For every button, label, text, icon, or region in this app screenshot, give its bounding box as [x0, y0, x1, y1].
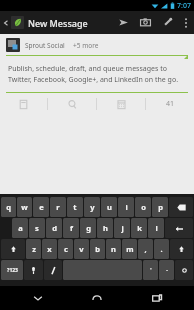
button[interactable]: Backspace: [169, 197, 193, 217]
button[interactable]: g: [80, 218, 96, 238]
button[interactable]: -: [159, 260, 174, 280]
button[interactable]: h: [97, 218, 113, 238]
staticText: k: [137, 223, 142, 233]
button[interactable]: n: [106, 239, 121, 259]
button[interactable]: Search: [48, 93, 96, 115]
button[interactable]: Schedule: [97, 93, 145, 115]
button[interactable]: j: [114, 218, 130, 238]
button[interactable]: Settings: [175, 260, 193, 280]
button[interactable]: u: [101, 197, 117, 217]
staticText: s: [35, 223, 39, 233]
button[interactable]: Attach: [156, 11, 178, 34]
staticText: ?123: [7, 267, 18, 274]
button[interactable]: q: [1, 197, 16, 217]
button[interactable]: Back: [16, 286, 60, 310]
staticText: i: [125, 202, 128, 212]
staticText: q: [6, 202, 11, 212]
button[interactable]: f: [63, 218, 79, 238]
button[interactable]: b: [90, 239, 105, 259]
button[interactable]: x: [42, 239, 57, 259]
staticText: New Message: [28, 17, 88, 29]
button[interactable]: 41: [146, 93, 194, 115]
button[interactable]: c: [58, 239, 73, 259]
button[interactable]: Handwriting: [44, 260, 62, 280]
button[interactable]: p: [152, 197, 168, 217]
staticText: -: [166, 267, 168, 274]
staticText: ,: [144, 244, 147, 254]
button[interactable]: s: [29, 218, 45, 238]
button[interactable]: t: [67, 197, 83, 217]
staticText: l: [155, 223, 158, 233]
staticText: g: [86, 223, 91, 233]
button[interactable]: ?123: [1, 260, 23, 280]
button[interactable]: r: [50, 197, 66, 217]
staticText: c: [64, 244, 68, 254]
staticText: Sprout Social: [25, 41, 65, 50]
button[interactable]: ': [143, 260, 158, 280]
staticText: x: [47, 244, 52, 254]
button[interactable]: o: [135, 197, 151, 217]
staticText: d: [52, 223, 57, 233]
staticText: u: [107, 202, 112, 212]
staticText: p: [158, 202, 163, 212]
button[interactable]: Camera: [134, 11, 156, 34]
staticText: 7:07: [177, 1, 191, 11]
staticText: z: [32, 244, 36, 254]
staticText: ': [150, 267, 152, 274]
staticText: h: [103, 223, 108, 233]
staticText: f: [70, 223, 73, 233]
button[interactable]: Recents: [135, 286, 179, 310]
staticText: v: [79, 244, 84, 254]
staticText: e: [39, 202, 44, 212]
staticText: .: [160, 244, 163, 254]
staticText: o: [141, 202, 146, 212]
button[interactable]: Sprout Social profile: [6, 38, 20, 52]
button[interactable]: i: [118, 197, 134, 217]
button[interactable]: Shift: [1, 239, 25, 259]
button[interactable]: More options: [178, 11, 194, 34]
button[interactable]: v: [74, 239, 89, 259]
staticText: Publish, schedule, draft, and queue mess…: [8, 64, 186, 84]
button[interactable]: y: [84, 197, 100, 217]
staticText: j: [121, 223, 124, 233]
button[interactable]: d: [46, 218, 62, 238]
button[interactable]: ,: [138, 239, 153, 259]
button[interactable]: Draft: [0, 93, 47, 115]
staticText: r: [56, 202, 60, 212]
button[interactable]: Enter: [165, 218, 193, 238]
button[interactable]: a: [12, 218, 28, 238]
button[interactable]: Shift: [170, 239, 193, 259]
staticText: w: [21, 202, 28, 212]
button[interactable]: Publish, schedule, draft, and queue mess…: [8, 64, 186, 84]
button[interactable]: +5 more: [73, 41, 99, 50]
staticText: +5 more: [73, 41, 99, 50]
button[interactable]: Voice input: [24, 260, 43, 280]
button[interactable]: e: [33, 197, 49, 217]
button[interactable]: m: [122, 239, 137, 259]
button[interactable]: Send: [112, 11, 134, 34]
staticText: b: [95, 244, 100, 254]
button[interactable]: z: [26, 239, 41, 259]
staticText: a: [18, 223, 23, 233]
staticText: 41: [166, 99, 175, 109]
button[interactable]: Navigate up: [0, 11, 90, 34]
staticText: m: [126, 244, 134, 254]
staticText: t: [73, 202, 77, 212]
staticText: y: [90, 202, 95, 212]
button[interactable]: l: [148, 218, 164, 238]
button[interactable]: .: [154, 239, 169, 259]
staticText: n: [111, 244, 116, 254]
button[interactable]: Home: [75, 286, 119, 310]
button[interactable]: w: [17, 197, 32, 217]
button[interactable]: k: [131, 218, 147, 238]
